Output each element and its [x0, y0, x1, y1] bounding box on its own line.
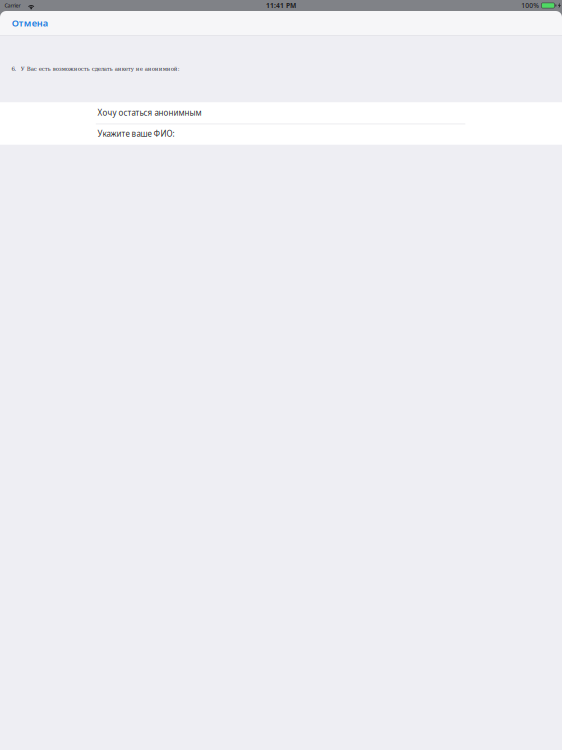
- staticText: 6.: [12, 66, 17, 72]
- staticText: 11:41 PM: [266, 1, 296, 10]
- staticText: 100%: [521, 1, 539, 10]
- staticText: Хочу остаться анонимным: [97, 107, 201, 118]
- button[interactable]: Отмена: [0, 11, 58, 35]
- staticText: Укажите ваше ФИО:: [97, 128, 174, 139]
- staticText: Отмена: [12, 17, 48, 29]
- button[interactable]: Хочу остаться анонимным: [0, 102, 562, 123]
- button[interactable]: Укажите ваше ФИО:: [0, 123, 562, 144]
- staticText: Carrier: [5, 2, 21, 9]
- staticText: У Вас есть возможность сделать анкету не…: [21, 66, 180, 72]
